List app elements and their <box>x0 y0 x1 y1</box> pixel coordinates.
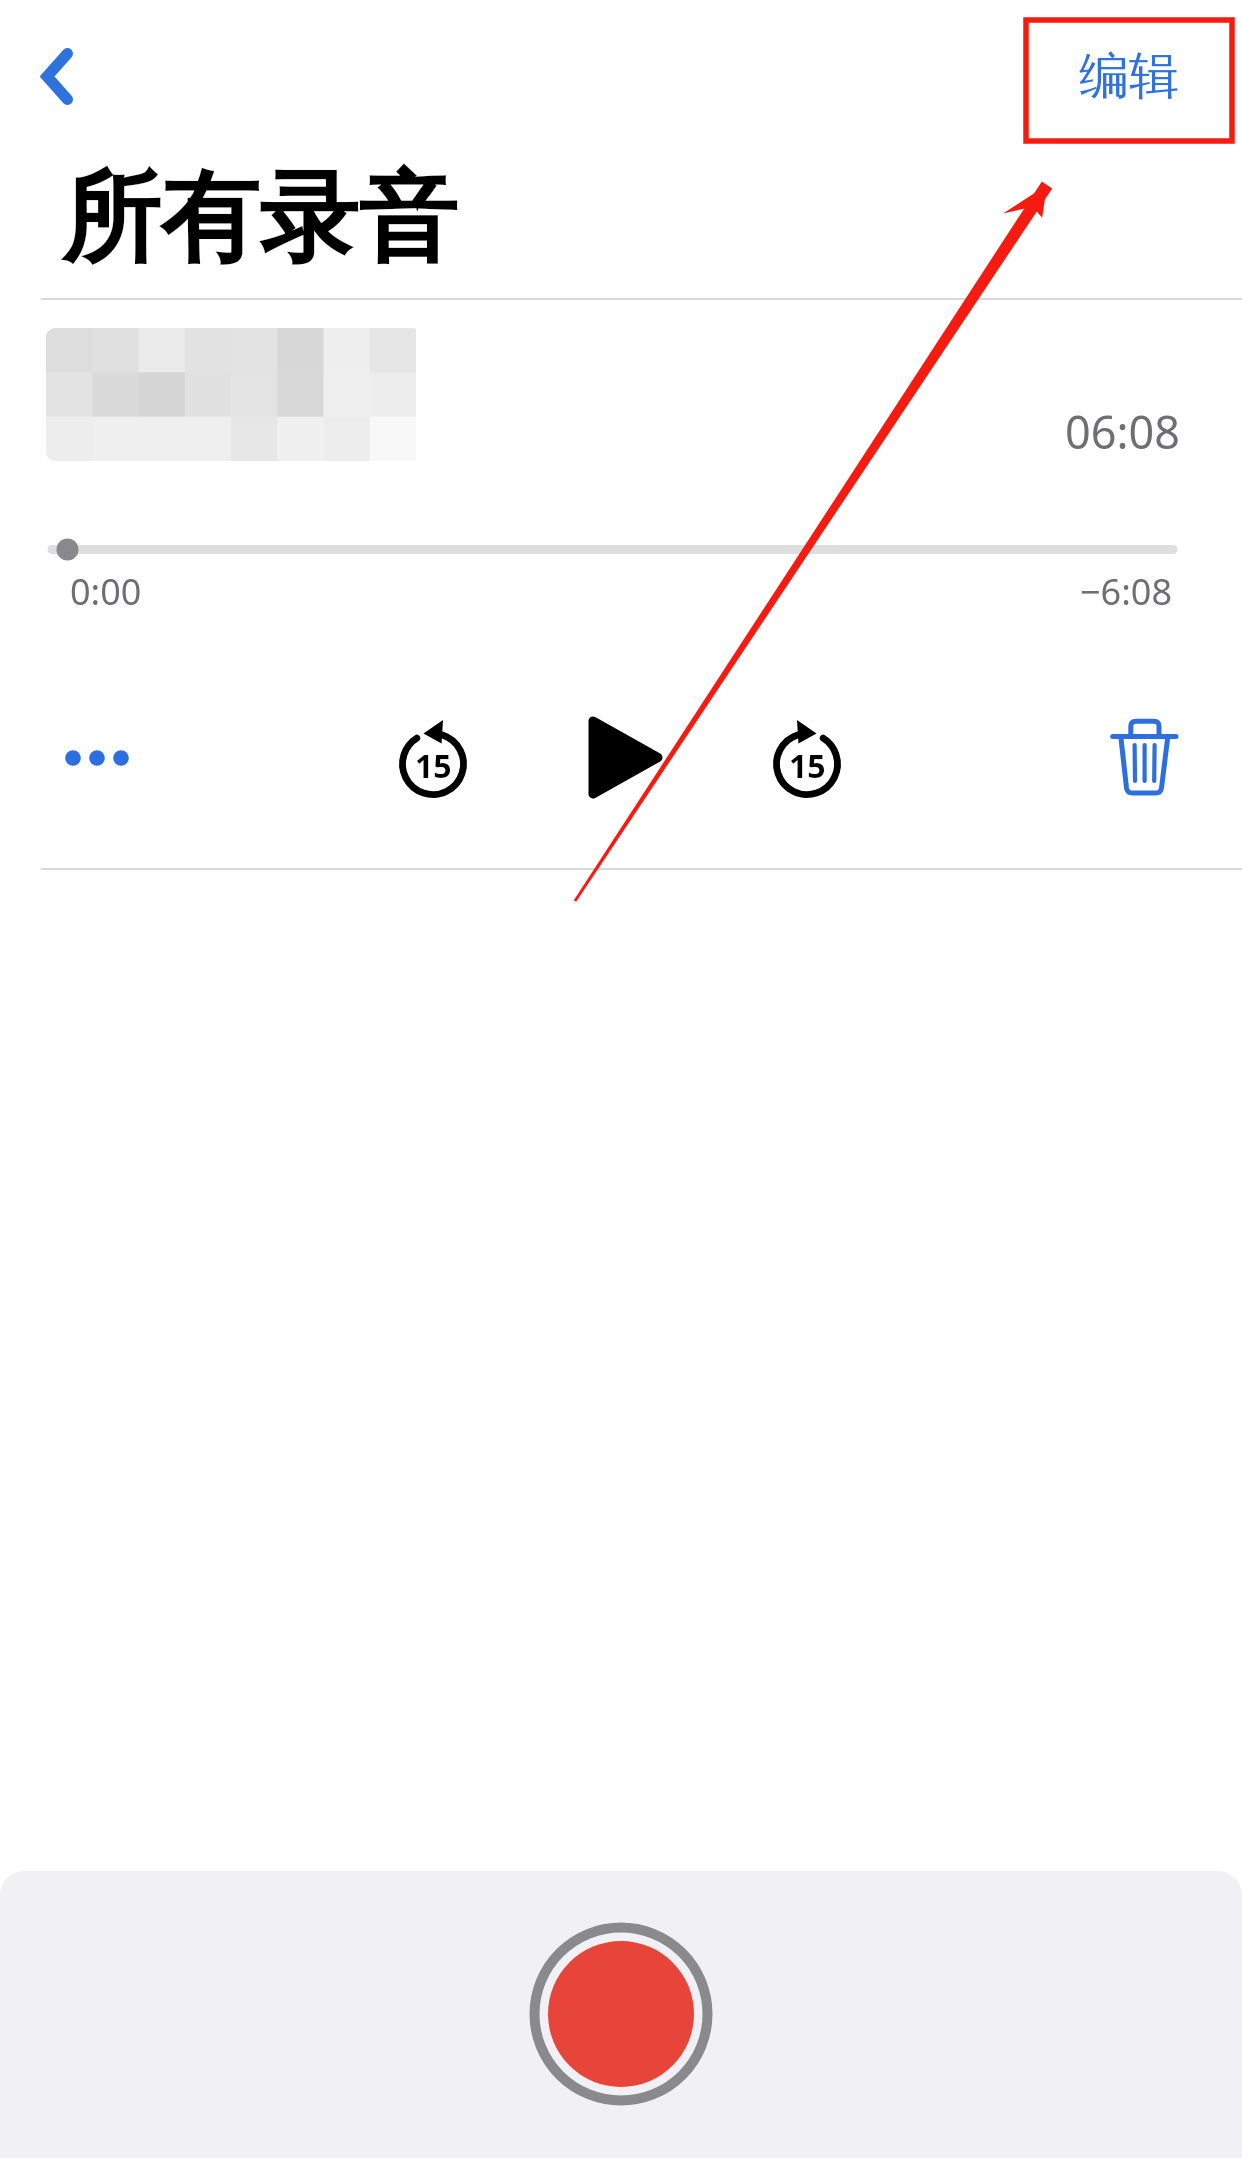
button[interactable]: Skip back 15 seconds <box>383 714 483 814</box>
staticText: 15 <box>789 744 826 788</box>
staticText: 06:08 <box>872 401 1180 462</box>
button[interactable]: Skip forward 15 seconds <box>757 714 857 814</box>
button[interactable]: Delete <box>1094 714 1194 814</box>
button[interactable]: Back <box>10 22 106 130</box>
button[interactable]: 编辑 <box>1024 14 1233 138</box>
staticText: 15 <box>415 744 452 788</box>
button[interactable]: Record <box>528 1922 714 2108</box>
staticText: 0:00 <box>70 567 142 616</box>
staticText: 编辑 <box>1079 45 1179 108</box>
button[interactable]: Play <box>575 707 675 807</box>
button[interactable]: More options <box>40 718 150 802</box>
staticText: 所有录音 <box>61 157 457 282</box>
staticText: −6:08 <box>870 567 1172 616</box>
